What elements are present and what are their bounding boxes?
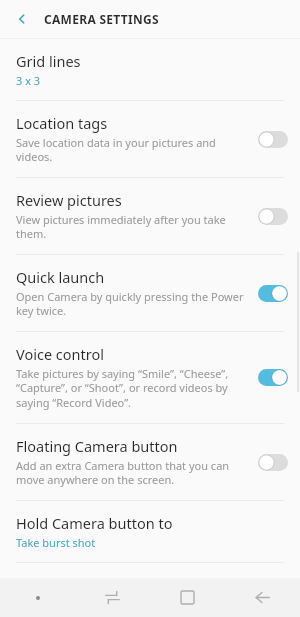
staticText: Add an extra Camera button that you can … [16, 458, 248, 488]
button[interactable]: Location tags [0, 101, 300, 177]
staticText: 3 x 3 [16, 73, 41, 88]
button[interactable]: Quick launch [0, 255, 300, 331]
staticText: CAMERA SETTINGS [44, 11, 159, 27]
staticText: Save location data in your pictures and … [16, 135, 248, 165]
button[interactable]: Recent apps [150, 578, 225, 617]
staticText: Review pictures [16, 190, 122, 210]
staticText: Floating Camera button [16, 436, 178, 456]
staticText: View pictures immediately after you take… [16, 212, 248, 242]
staticText: Take burst shot [16, 535, 96, 550]
staticText: Hold Camera button to [16, 513, 173, 533]
staticText: Voice control [16, 344, 104, 364]
staticText: Open Camera by quickly pressing the Powe… [16, 289, 248, 319]
button[interactable]: Switch apps [75, 578, 150, 617]
button[interactable]: Review pictures [0, 178, 300, 254]
staticText: Take pictures by saying “Smile”, “Cheese… [16, 366, 248, 411]
staticText: Location tags [16, 113, 108, 133]
button[interactable]: Navigate up [0, 0, 44, 38]
button[interactable]: Back [225, 578, 300, 617]
button[interactable]: Grid lines [0, 39, 300, 100]
button[interactable]: Hold Camera button to [0, 501, 300, 562]
button[interactable]: Voice control [0, 332, 300, 423]
button[interactable]: Menu [0, 578, 75, 617]
staticText: Quick launch [16, 267, 105, 287]
staticText: Grid lines [16, 51, 81, 71]
button[interactable]: Floating Camera button [0, 424, 300, 500]
